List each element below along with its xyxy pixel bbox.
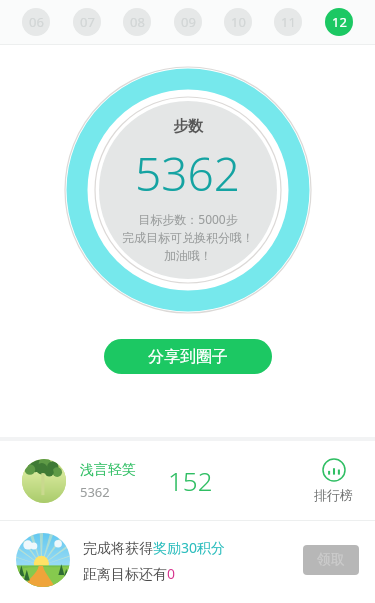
button[interactable]: 09 [174,8,202,36]
button[interactable]: 浅言轻笑 [0,441,375,520]
staticText: 加油哦！ [164,248,212,263]
staticText: 09 [181,13,196,31]
other: 排行榜 [322,458,346,482]
staticText: 排行榜 [314,487,353,503]
staticText: 152 [168,463,213,498]
staticText: 10 [231,13,246,31]
button[interactable]: 排行榜 [310,454,357,507]
staticText: 5362 [80,483,110,501]
staticText: 步数 [173,117,203,136]
button[interactable]: 11 [274,8,302,36]
staticText: 06 [29,13,44,31]
staticText: 分享到圈子 [148,347,228,367]
staticText: 浅言轻笑 [80,461,136,479]
staticText: 完成目标可兑换积分哦！ [122,230,254,245]
button[interactable]: 07 [73,8,101,36]
staticText: 5362 [135,142,241,205]
button[interactable]: 分享到圈子 [104,339,272,374]
button[interactable]: 领取 [303,545,359,575]
staticText: 11 [281,13,296,31]
button[interactable]: 10 [224,8,252,36]
button[interactable]: 06 [22,8,50,36]
staticText: 08 [130,13,145,31]
button[interactable]: 08 [123,8,151,36]
staticText: 07 [80,13,95,31]
staticText: 目标步数：5000步 [138,211,238,227]
button[interactable]: 12 [325,8,353,36]
staticText: 距离目标还有0 [83,564,176,583]
staticText: 完成将获得奖励30积分 [83,538,226,557]
staticText: 12 [332,13,347,31]
staticText: 领取 [317,551,345,569]
